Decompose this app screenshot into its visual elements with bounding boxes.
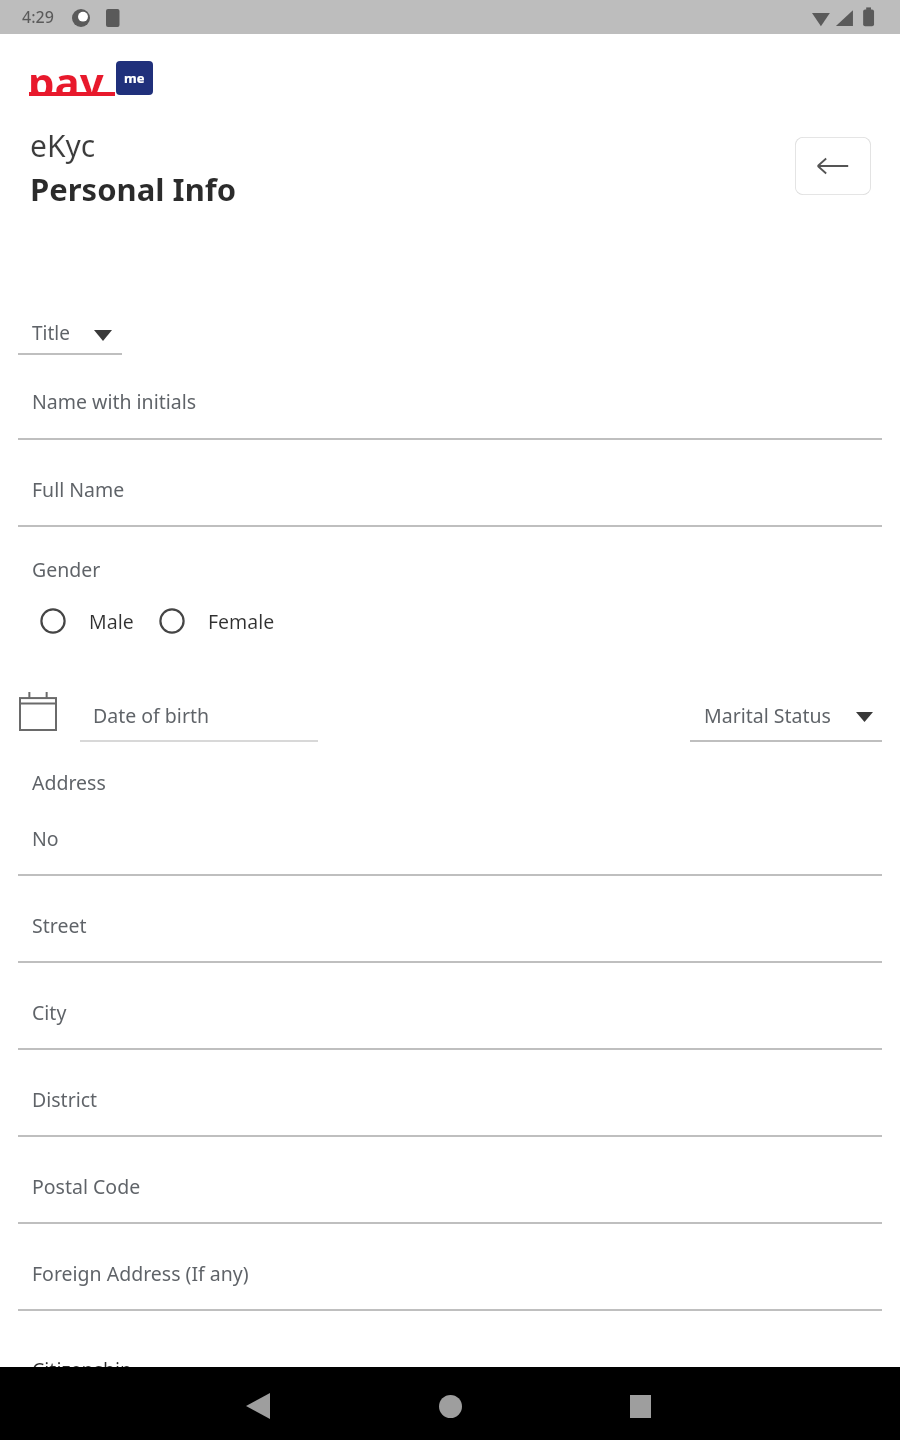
- staticText: Foreign Address (If any): [32, 1260, 249, 1287]
- staticText: No: [32, 825, 59, 852]
- button[interactable]: Name with initials: [18, 374, 882, 440]
- staticText: eKyc: [30, 125, 96, 166]
- button[interactable]: Back: [795, 137, 871, 195]
- button[interactable]: Female: [155, 600, 290, 642]
- button[interactable]: Full Name: [18, 462, 882, 527]
- staticText: Street: [32, 912, 87, 939]
- button[interactable]: City: [18, 985, 882, 1050]
- staticText: Postal Code: [32, 1173, 141, 1200]
- button[interactable]: Pick date: [20, 692, 56, 730]
- staticText: Citizenship: [32, 1356, 133, 1383]
- button[interactable]: District: [18, 1072, 882, 1137]
- button[interactable]: Marital Status: [690, 692, 882, 742]
- staticText: Title: [32, 320, 70, 346]
- button[interactable]: Foreign Address (If any): [18, 1246, 882, 1311]
- staticText: Name with initials: [32, 388, 197, 415]
- staticText: District: [32, 1086, 98, 1113]
- staticText: Marital Status: [704, 702, 831, 729]
- staticText: City: [32, 999, 67, 1026]
- button[interactable]: Male: [36, 600, 146, 642]
- button[interactable]: Street: [18, 898, 882, 963]
- staticText: pay: [28, 53, 104, 95]
- staticText: Male: [89, 608, 134, 635]
- staticText: Gender: [32, 556, 101, 583]
- button[interactable]: Home: [428, 1385, 472, 1427]
- button[interactable]: Title: [18, 312, 128, 358]
- staticText: 4:29: [22, 6, 54, 28]
- button[interactable]: Date of birth: [80, 692, 318, 742]
- button[interactable]: Postal Code: [18, 1159, 882, 1224]
- button[interactable]: Recent apps: [618, 1385, 662, 1427]
- staticText: me: [124, 69, 145, 87]
- button[interactable]: Back: [236, 1385, 280, 1427]
- staticText: Full Name: [32, 476, 125, 503]
- staticText: Date of birth: [93, 702, 210, 729]
- staticText: Address: [32, 769, 106, 796]
- button[interactable]: No: [18, 811, 882, 876]
- staticText: Female: [208, 608, 275, 635]
- staticText: Personal Info: [30, 168, 237, 210]
